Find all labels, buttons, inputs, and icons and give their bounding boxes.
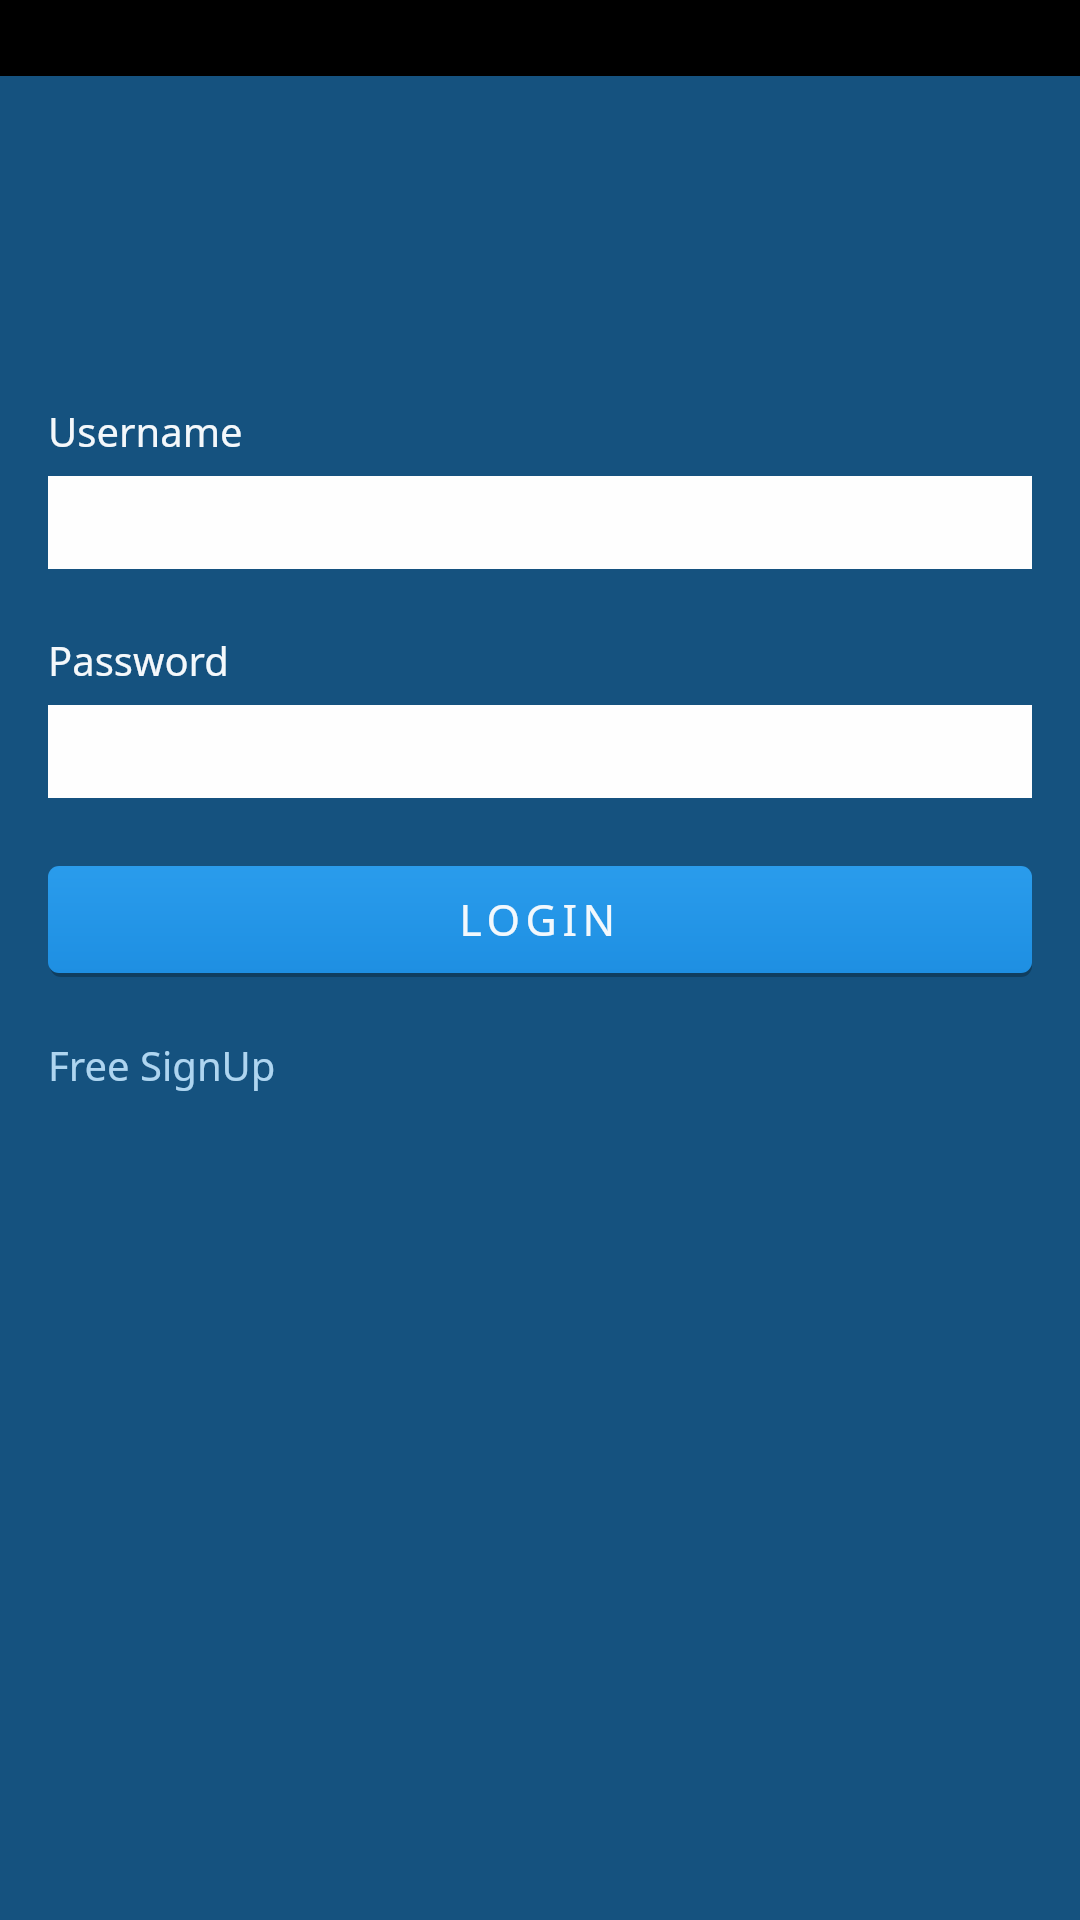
- button[interactable]: LOGIN: [48, 866, 1032, 973]
- button[interactable]: Free SignUp: [48, 1035, 388, 1095]
- staticText: Free SignUp: [48, 1038, 276, 1092]
- staticText: LOGIN: [459, 890, 621, 949]
- staticText: Password: [48, 633, 229, 687]
- staticText: Username: [48, 404, 243, 458]
